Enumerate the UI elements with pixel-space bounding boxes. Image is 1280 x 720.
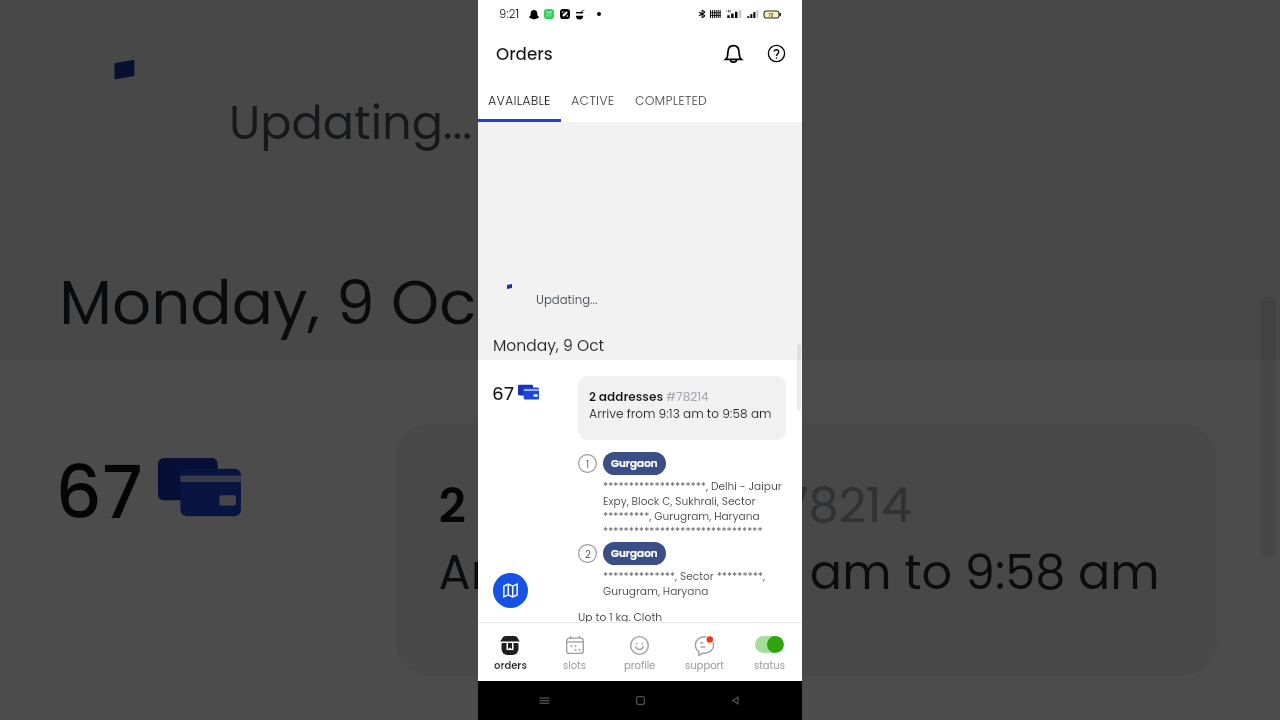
staticText: 2 addresses #78214 [589, 388, 709, 405]
staticText: Updating... [536, 292, 598, 308]
other: Menu [538, 694, 551, 707]
staticText: ********************, Delhi - Jaipur Exp… [603, 479, 786, 539]
button[interactable]: COMPLETED [625, 78, 718, 122]
staticText: Orders [496, 42, 553, 66]
button[interactable]: ACTIVE [561, 78, 625, 122]
staticText: Monday, 9 Oct [493, 335, 605, 357]
button[interactable]: profile [607, 622, 672, 681]
staticText: 78 [768, 12, 774, 18]
staticText: Arrive from 9:13 am to 9:58 am [438, 538, 1161, 605]
button[interactable]: Help [762, 39, 791, 68]
staticText: 67 [492, 381, 515, 407]
button[interactable]: slots [542, 622, 607, 681]
staticText: support [685, 658, 724, 672]
button[interactable]: 2 addresses #78214 [578, 376, 786, 440]
staticText: profile [624, 658, 656, 672]
staticText: 2 [585, 547, 591, 561]
staticText: orders [494, 658, 527, 672]
button[interactable]: support [672, 622, 737, 681]
button[interactable]: Open map [493, 573, 528, 608]
staticText: **************, Sector *********, Gurugr… [603, 569, 786, 599]
staticText: Up to 1 kg. Cloth [578, 610, 663, 625]
other: Back [729, 694, 742, 707]
staticText: Gurgaon [611, 456, 658, 471]
staticText: Monday, 9 Oct [59, 261, 502, 348]
staticText: 9:21 [499, 6, 520, 22]
other: Home [634, 694, 647, 707]
button[interactable]: orders [478, 622, 542, 681]
button[interactable]: Notifications [719, 39, 748, 68]
staticText: Arrive from 9:13 am to 9:58 am [589, 405, 772, 422]
staticText: AVAILABLE [488, 92, 551, 109]
staticText: 1 [586, 457, 590, 471]
staticText: ACTIVE [571, 92, 615, 109]
staticText: 2 addresses #78214 [438, 471, 913, 538]
button[interactable]: AVAILABLE [478, 78, 561, 122]
staticText: slots [563, 658, 586, 672]
button[interactable]: 2 addresses #78214 [395, 423, 1217, 676]
staticText: Gurgaon [611, 546, 658, 561]
staticText: status [754, 658, 785, 672]
staticText: COMPLETED [635, 92, 708, 109]
button[interactable]: status [737, 622, 802, 681]
staticText: Updating... [229, 91, 474, 154]
staticText: 67 [55, 443, 146, 546]
